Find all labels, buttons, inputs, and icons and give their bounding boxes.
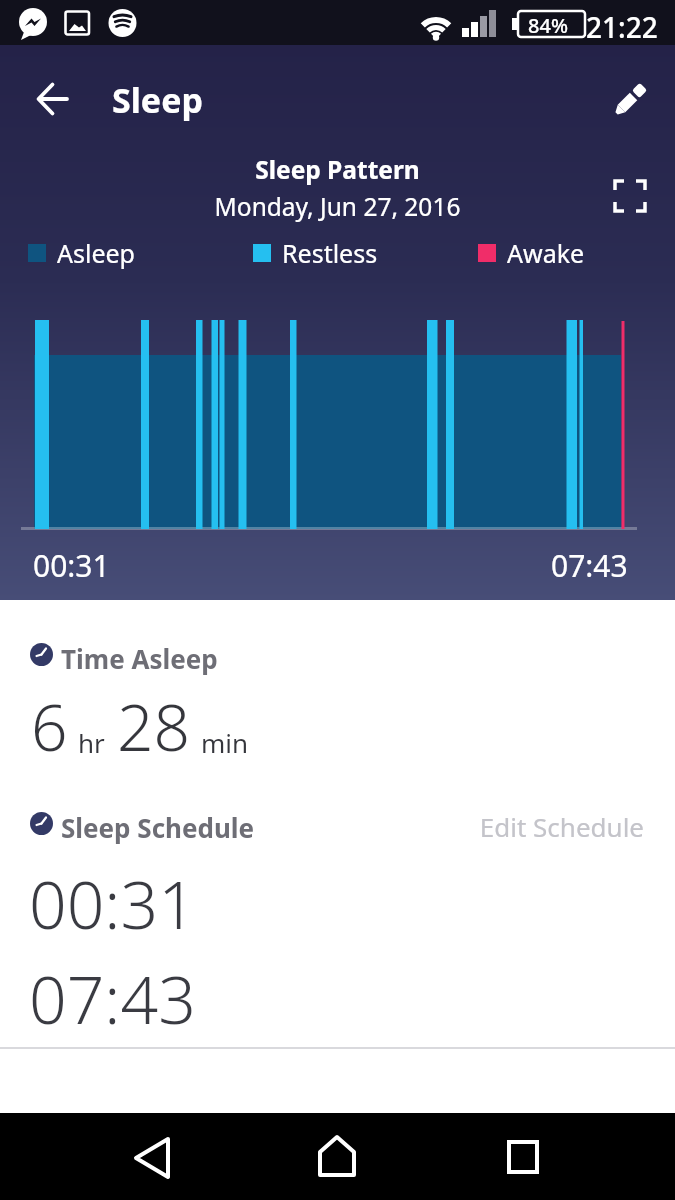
- staticText: 28: [117, 683, 191, 770]
- button[interactable]: [507, 1140, 539, 1174]
- staticText: Asleep: [57, 236, 135, 270]
- staticText: 07:43: [551, 545, 628, 586]
- staticText: 00:31: [33, 545, 110, 586]
- button[interactable]: [611, 81, 649, 119]
- staticText: Sleep: [112, 77, 203, 123]
- staticText: 84%: [528, 12, 568, 39]
- button[interactable]: [318, 1135, 356, 1177]
- button[interactable]: [615, 181, 645, 211]
- button[interactable]: Edit Schedule: [0, 809, 644, 844]
- staticText: 21:22: [586, 8, 658, 46]
- staticText: Restless: [282, 236, 378, 270]
- staticText: 07:43: [29, 953, 196, 1043]
- button[interactable]: [37, 81, 69, 117]
- staticText: hr: [78, 725, 105, 760]
- staticText: Monday, Jun 27, 2016: [0, 190, 675, 223]
- staticText: 6: [31, 683, 68, 770]
- button[interactable]: [134, 1137, 172, 1181]
- staticText: min: [201, 725, 249, 760]
- staticText: Sleep Pattern: [0, 153, 675, 186]
- staticText: Sleep Schedule: [61, 810, 255, 845]
- staticText: 00:31: [29, 858, 196, 948]
- staticText: Time Asleep: [61, 641, 218, 676]
- staticText: Awake: [507, 236, 585, 270]
